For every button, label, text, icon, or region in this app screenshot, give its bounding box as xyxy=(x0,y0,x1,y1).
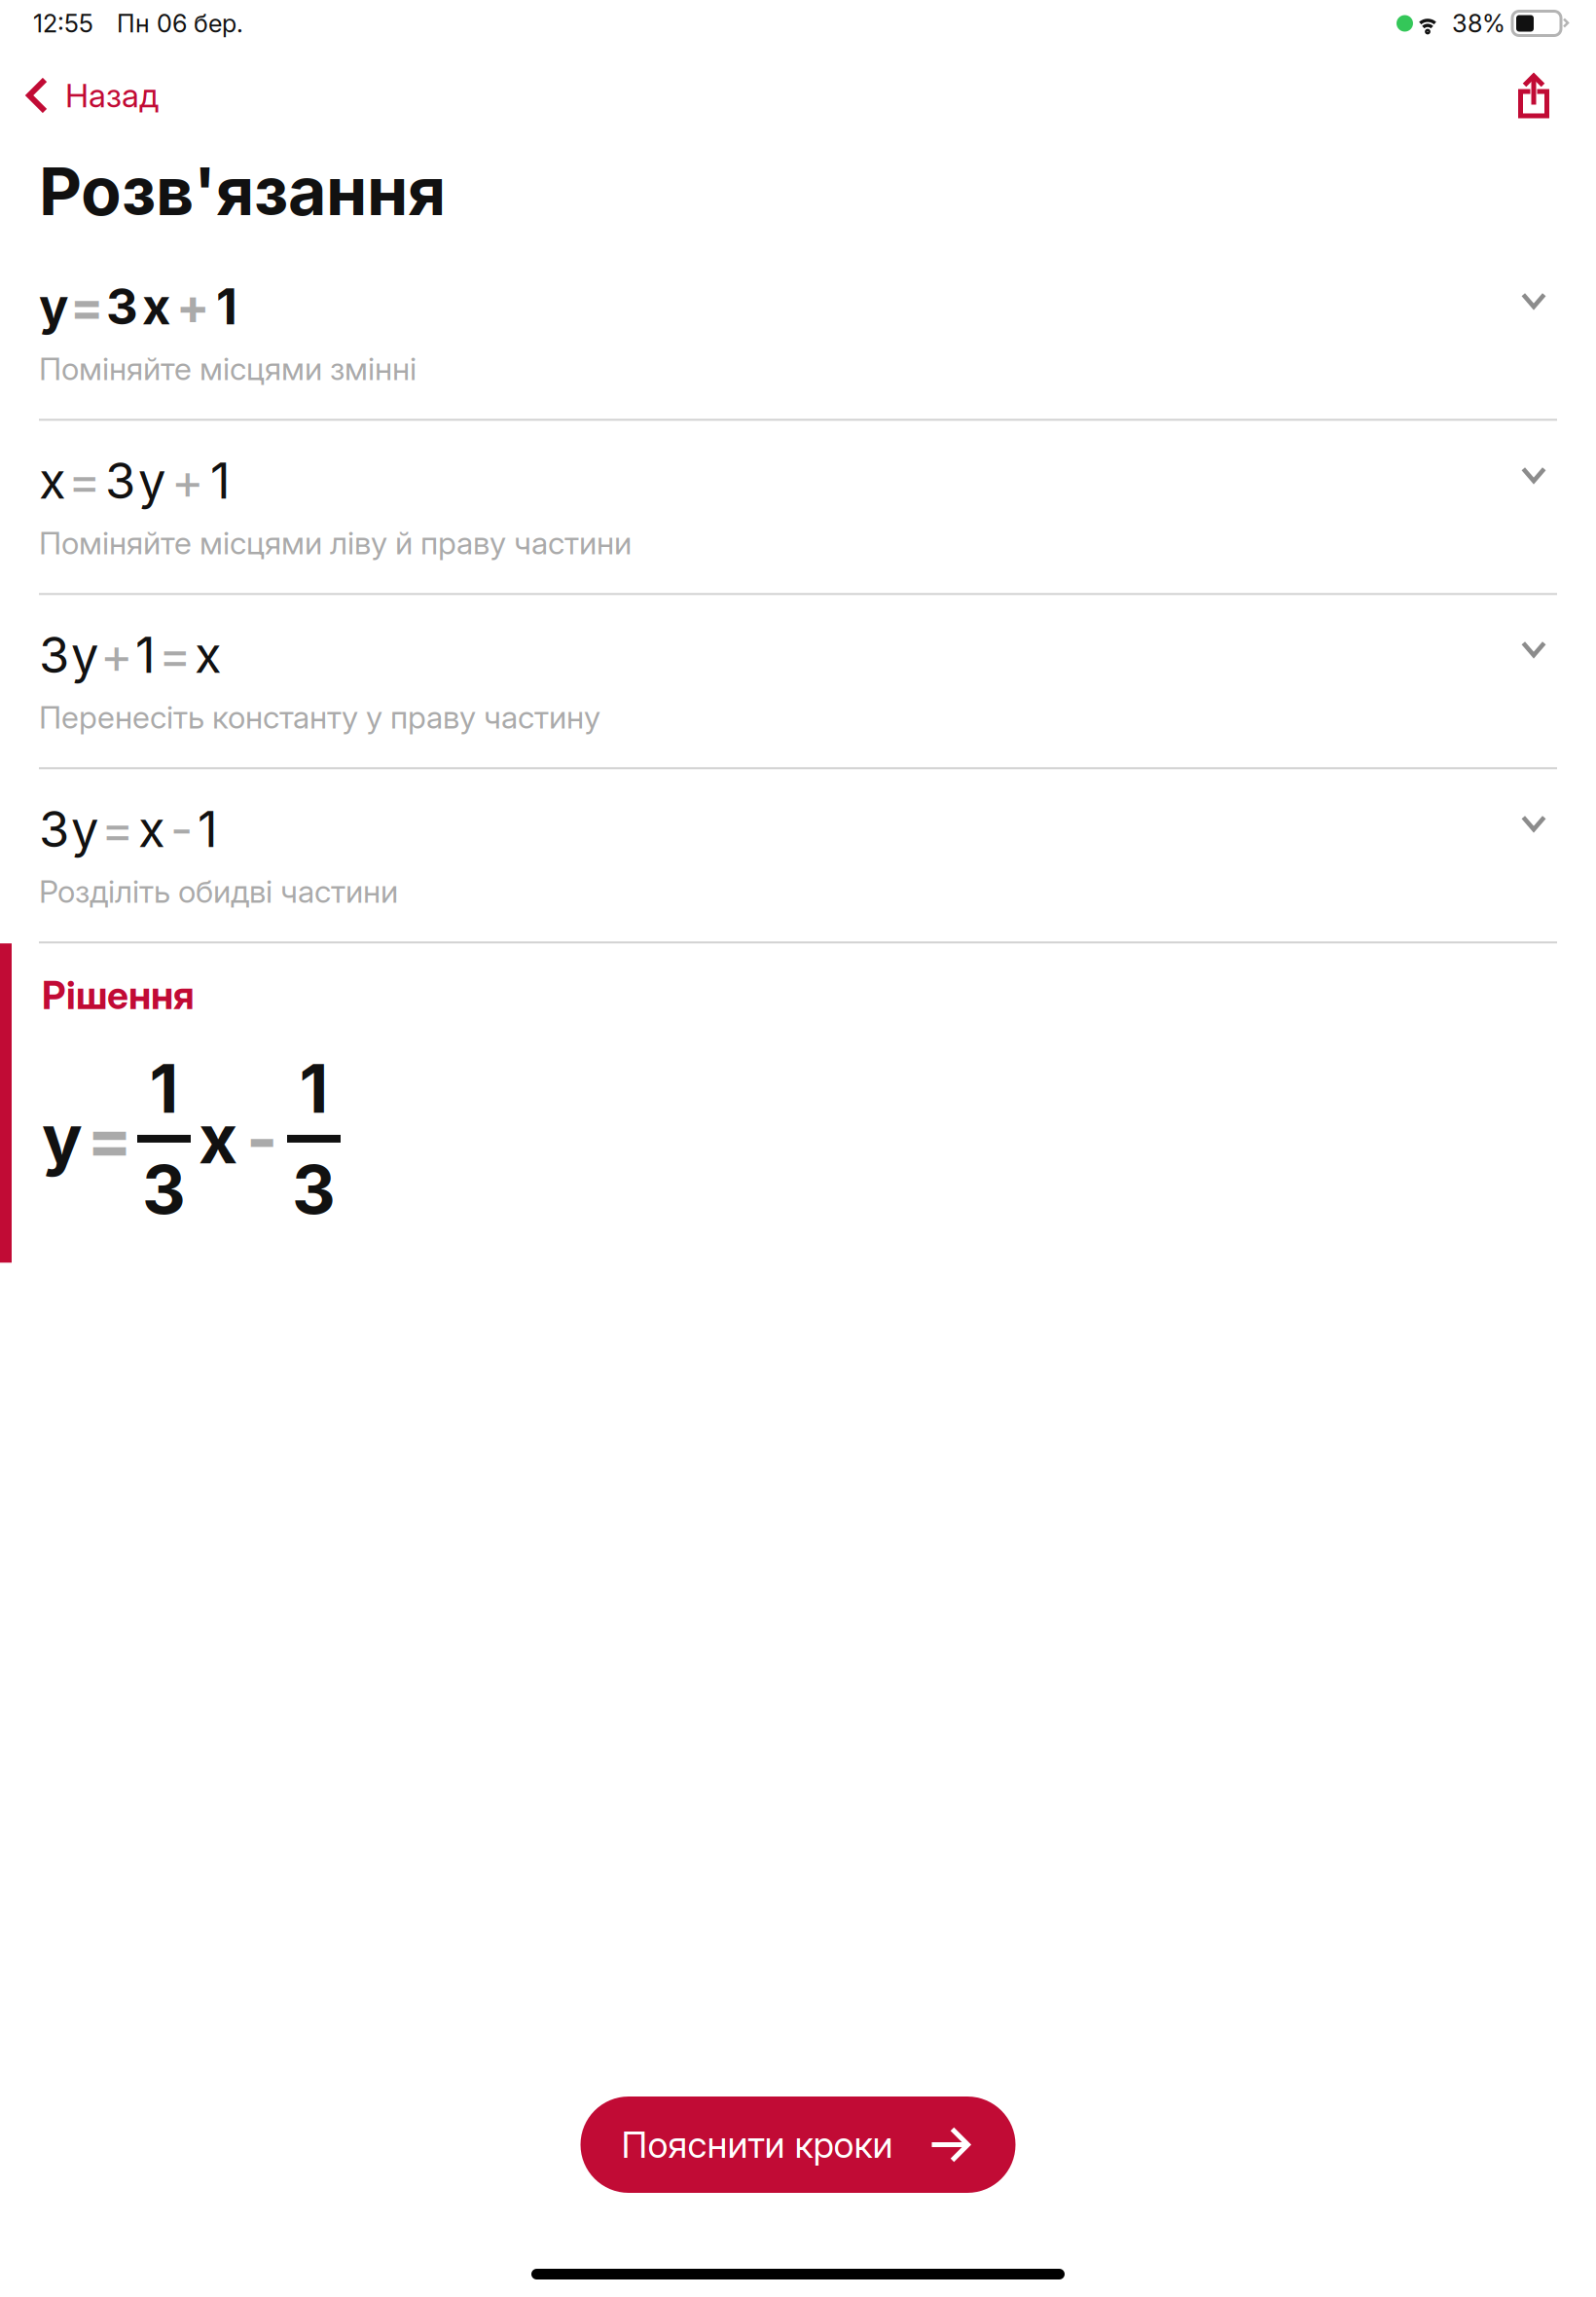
button[interactable]: x xyxy=(0,421,1596,595)
staticText: 3 xyxy=(292,1148,336,1230)
staticText: Поміняйте місцями змінні xyxy=(39,350,417,388)
staticText: 1 xyxy=(198,799,218,859)
staticText: 3 xyxy=(39,625,69,685)
staticText: + xyxy=(176,277,209,336)
staticText: 1 xyxy=(299,1047,328,1129)
staticText: 1 xyxy=(149,1047,179,1129)
staticText: = xyxy=(101,799,134,859)
staticText: Поміняйте місцями ліву й праву частини xyxy=(39,524,632,562)
button[interactable]: Пояснити кроки xyxy=(580,2096,1016,2193)
staticText: 3 xyxy=(39,799,69,859)
button[interactable]: Назад xyxy=(0,58,184,132)
staticText: x xyxy=(199,1098,237,1180)
staticText: x xyxy=(195,625,222,685)
staticText: 1 xyxy=(216,277,237,336)
staticText: x xyxy=(142,277,170,336)
staticText: 3 xyxy=(105,451,135,511)
staticText: = xyxy=(159,625,192,685)
staticText: x xyxy=(39,451,66,511)
staticText: y xyxy=(39,277,69,336)
staticText: = xyxy=(87,1098,132,1180)
staticText: y xyxy=(42,1098,83,1180)
staticText: = xyxy=(70,277,103,336)
staticText: 12:55 xyxy=(33,8,93,38)
staticText: Пояснити кроки xyxy=(621,2123,893,2167)
staticText: + xyxy=(171,451,204,511)
staticText: y xyxy=(71,799,98,859)
staticText: 38% xyxy=(1452,8,1505,38)
staticText: - xyxy=(246,1098,277,1180)
staticText: Рішення xyxy=(42,973,195,1018)
staticText: Пн 06 бер. xyxy=(117,8,243,38)
staticText: Розділіть обидві частини xyxy=(39,873,398,910)
button[interactable]: y xyxy=(0,247,1596,421)
staticText: 1 xyxy=(210,451,231,511)
staticText: Назад xyxy=(65,76,159,115)
button[interactable]: 3 xyxy=(0,595,1596,769)
staticText: 3 xyxy=(106,277,138,336)
staticText: Розв'язання xyxy=(39,151,446,231)
staticText: Перенесіть константу у праву частину xyxy=(39,698,600,736)
button[interactable]: Поділитися xyxy=(1489,58,1596,132)
staticText: 3 xyxy=(142,1148,186,1230)
staticText: 1 xyxy=(135,625,156,685)
staticText: = xyxy=(68,451,101,511)
staticText: - xyxy=(170,799,193,859)
staticText: + xyxy=(100,625,133,685)
staticText: y xyxy=(71,625,98,685)
button[interactable]: 3 xyxy=(0,769,1596,943)
staticText: y xyxy=(138,451,165,511)
staticText: x xyxy=(138,799,165,859)
